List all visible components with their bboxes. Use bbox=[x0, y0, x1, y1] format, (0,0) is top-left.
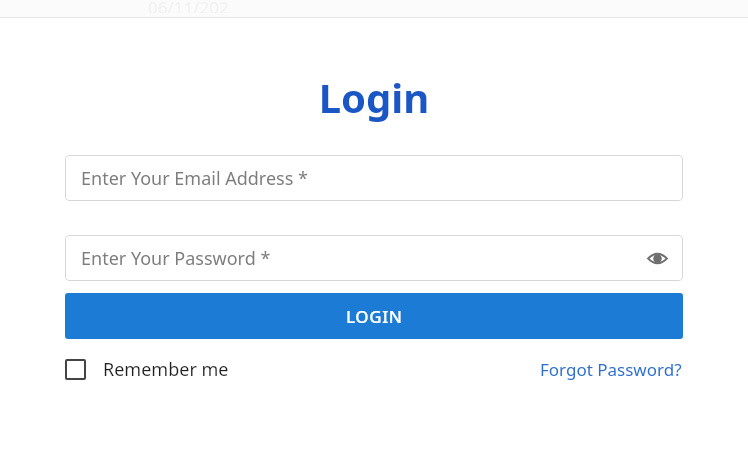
button[interactable]: Forgot Password? bbox=[540, 358, 682, 381]
button[interactable]: Enter Your Email Address * bbox=[65, 155, 683, 201]
staticText: Enter Your Email Address * bbox=[81, 166, 308, 191]
staticText: 06/11/202 bbox=[148, 0, 229, 13]
button[interactable]: Remember me bbox=[65, 357, 235, 382]
staticText: Forgot Password? bbox=[540, 358, 682, 381]
staticText: Remember me bbox=[103, 357, 229, 382]
staticText: LOGIN bbox=[346, 305, 403, 328]
staticText: Login bbox=[0, 70, 748, 124]
button[interactable]: LOGIN bbox=[65, 293, 683, 339]
button[interactable]: Show password bbox=[641, 242, 673, 274]
button[interactable]: Enter Your Password * bbox=[65, 235, 683, 281]
staticText: Enter Your Password * bbox=[81, 246, 271, 271]
